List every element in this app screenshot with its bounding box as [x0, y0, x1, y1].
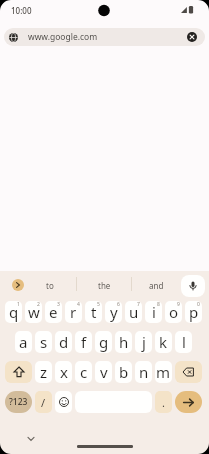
staticText: j: [142, 332, 146, 352]
staticText: f: [81, 332, 87, 352]
staticText: u: [129, 302, 139, 322]
staticText: y: [110, 302, 118, 322]
staticText: r: [70, 302, 77, 322]
button[interactable]: r: [65, 301, 82, 323]
staticText: p: [189, 302, 199, 322]
staticText: and: [149, 280, 164, 291]
staticText: s: [40, 332, 48, 352]
staticText: h: [119, 332, 129, 352]
staticText: i: [152, 302, 156, 322]
staticText: z: [40, 362, 48, 382]
staticText: 4: [77, 301, 80, 308]
staticText: a: [19, 332, 28, 352]
staticText: e: [49, 302, 58, 322]
button[interactable]: s: [35, 331, 52, 353]
staticText: 5: [97, 301, 100, 308]
button[interactable]: c: [75, 361, 92, 383]
staticText: n: [139, 362, 149, 382]
button[interactable]: the: [92, 277, 116, 293]
staticText: m: [156, 362, 171, 382]
button[interactable]: e: [45, 301, 62, 323]
button[interactable]: www.google.com: [4, 28, 205, 46]
staticText: /: [41, 395, 46, 410]
button[interactable]: b: [115, 361, 132, 383]
button[interactable]: [12, 279, 24, 291]
staticText: 3: [57, 301, 60, 308]
button[interactable]: v: [95, 361, 112, 383]
button[interactable]: j: [135, 331, 152, 353]
staticText: 10:00: [11, 5, 32, 16]
button[interactable]: ?123: [5, 391, 32, 413]
button[interactable]: [175, 361, 202, 383]
button[interactable]: to: [38, 277, 62, 293]
button[interactable]: f: [75, 331, 92, 353]
staticText: v: [100, 362, 108, 382]
staticText: l: [182, 332, 186, 352]
button[interactable]: [181, 275, 205, 297]
button[interactable]: [55, 391, 72, 413]
button[interactable]: y: [105, 301, 122, 323]
button[interactable]: l: [175, 331, 192, 353]
button[interactable]: i: [145, 301, 162, 323]
staticText: 0: [197, 301, 200, 308]
staticText: d: [59, 332, 69, 352]
staticText: 6: [117, 301, 120, 308]
button[interactable]: k: [155, 331, 172, 353]
button[interactable]: a: [15, 331, 32, 353]
button[interactable]: [5, 361, 32, 383]
button[interactable]: z: [35, 361, 52, 383]
button[interactable]: d: [55, 331, 72, 353]
button[interactable]: [25, 435, 37, 443]
button[interactable]: and: [144, 277, 168, 293]
staticText: q: [9, 302, 19, 322]
button[interactable]: [175, 391, 202, 413]
button[interactable]: w: [25, 301, 42, 323]
button[interactable]: p: [185, 301, 202, 323]
button[interactable]: h: [115, 331, 132, 353]
staticText: 2: [37, 301, 40, 308]
staticText: 7: [137, 301, 140, 308]
button[interactable]: m: [155, 361, 172, 383]
staticText: to: [46, 280, 54, 291]
button[interactable]: t: [85, 301, 102, 323]
staticText: x: [60, 362, 68, 382]
button[interactable]: q: [5, 301, 22, 323]
staticText: c: [80, 362, 88, 382]
staticText: 9: [177, 301, 180, 308]
staticText: b: [119, 362, 129, 382]
button[interactable]: o: [165, 301, 182, 323]
staticText: ?123: [9, 396, 28, 408]
staticText: o: [169, 302, 179, 322]
button[interactable]: x: [55, 361, 72, 383]
button[interactable]: n: [135, 361, 152, 383]
button[interactable]: .: [155, 391, 172, 413]
staticText: www.google.com: [28, 31, 98, 43]
staticText: 1: [17, 301, 20, 308]
button[interactable]: u: [125, 301, 142, 323]
staticText: 8: [157, 301, 160, 308]
button[interactable]: /: [35, 391, 52, 413]
staticText: .: [162, 395, 165, 410]
staticText: k: [159, 332, 168, 352]
staticText: t: [91, 302, 97, 322]
staticText: w: [28, 302, 40, 322]
staticText: the: [98, 280, 111, 291]
staticText: g: [99, 332, 109, 352]
button[interactable]: g: [95, 331, 112, 353]
